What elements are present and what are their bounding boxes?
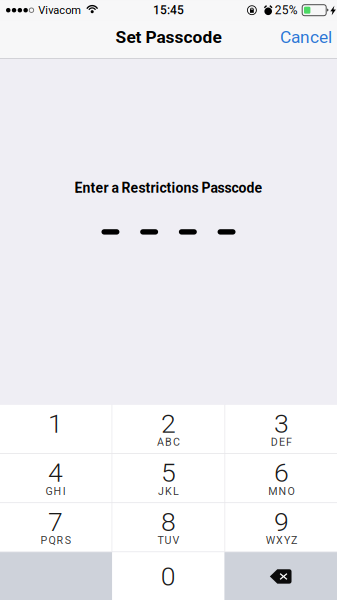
button[interactable]: 6 — [225, 454, 337, 502]
staticText: TUV — [157, 534, 180, 547]
staticText: 6 — [274, 457, 289, 488]
staticText: 5 — [161, 457, 176, 488]
staticText: 0 — [161, 561, 176, 592]
staticText: 4 — [48, 457, 63, 488]
staticText: 25% — [275, 3, 298, 17]
button[interactable]: 2 — [112, 405, 225, 453]
staticText: ABC — [157, 436, 180, 448]
staticText: DEF — [271, 436, 292, 448]
staticText: WXYZ — [266, 534, 297, 547]
button[interactable]: 8 — [112, 503, 225, 552]
button[interactable]: 7 — [0, 503, 112, 552]
button[interactable]: 0 — [112, 552, 224, 600]
staticText: PQRS — [40, 534, 71, 547]
button[interactable]: 5 — [112, 454, 225, 502]
button[interactable]: 9 — [225, 503, 337, 552]
staticText: 1 — [48, 408, 63, 439]
staticText: Set Passcode — [115, 27, 221, 47]
staticText: MNO — [268, 485, 294, 497]
button[interactable]: 4 — [0, 454, 112, 502]
button[interactable]: Delete — [224, 552, 337, 600]
staticText: Enter a Restrictions Passcode — [74, 180, 262, 196]
staticText: 2 — [161, 408, 176, 439]
staticText: Cancel — [280, 27, 332, 47]
staticText: 8 — [161, 506, 176, 537]
staticText: GHI — [45, 485, 66, 497]
staticText: 7 — [48, 506, 63, 537]
staticText: 9 — [274, 506, 289, 537]
staticText: 15:45 — [153, 3, 184, 17]
button[interactable]: 3 — [225, 405, 337, 453]
button[interactable]: 1 — [0, 405, 112, 453]
staticText: JKL — [158, 485, 179, 497]
button[interactable]: Cancel — [277, 20, 335, 58]
staticText: Vivacom — [38, 4, 81, 17]
staticText: 3 — [274, 408, 289, 439]
